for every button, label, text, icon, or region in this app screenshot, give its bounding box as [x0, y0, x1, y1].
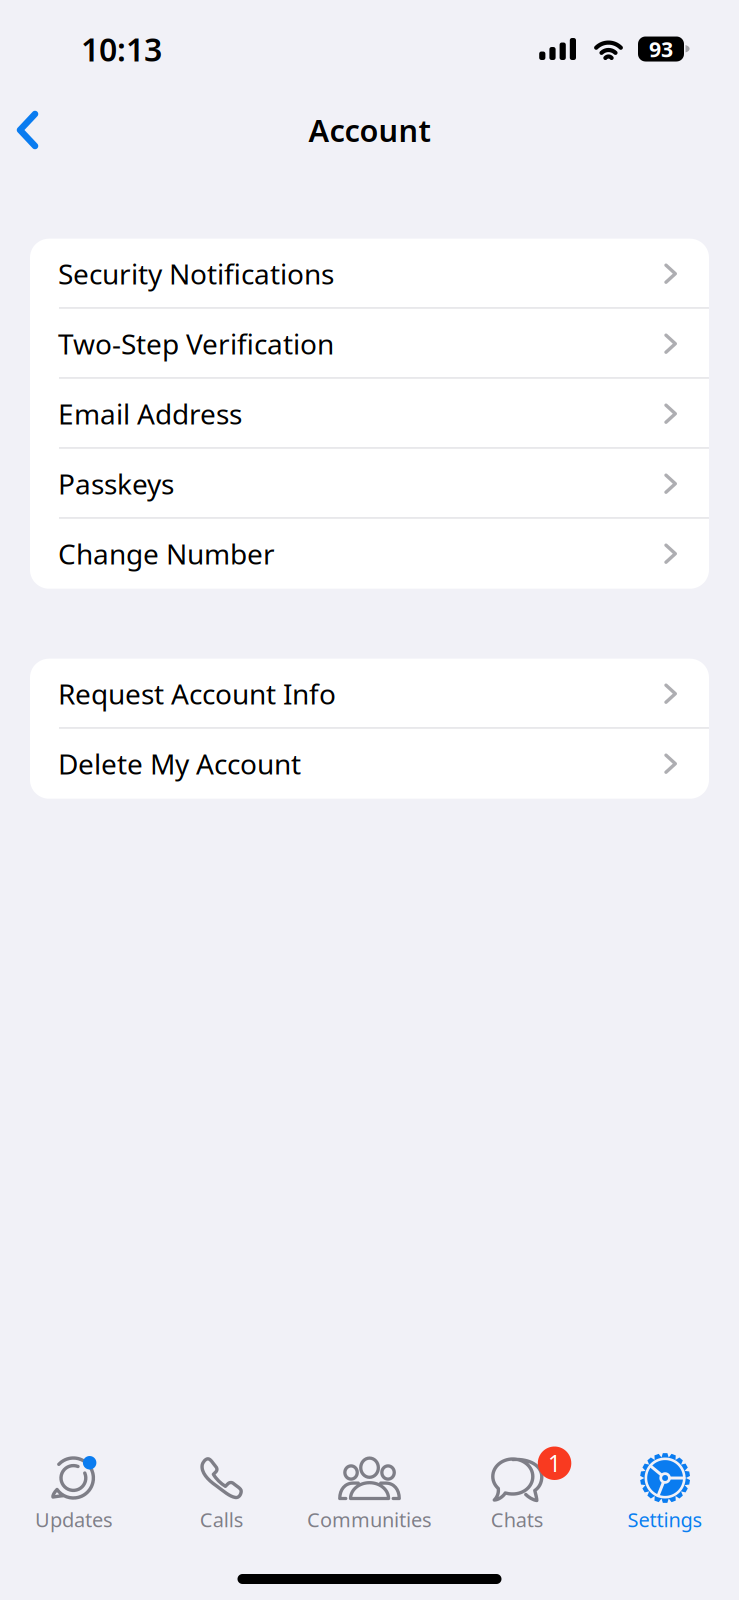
- button[interactable]: Delete My Account: [30, 729, 709, 799]
- button[interactable]: Change Number: [30, 519, 709, 589]
- button[interactable]: Two-Step Verification: [30, 309, 709, 379]
- staticText: Communities: [307, 1506, 432, 1533]
- staticText: 1: [548, 1448, 561, 1478]
- staticText: Calls: [200, 1506, 244, 1533]
- button[interactable]: Security Notifications: [30, 239, 709, 309]
- button[interactable]: Settings: [591, 1455, 739, 1530]
- staticText: Request Account Info: [58, 675, 336, 712]
- staticText: Delete My Account: [58, 745, 301, 782]
- button[interactable]: Calls: [148, 1455, 296, 1530]
- button[interactable]: Back: [0, 95, 61, 165]
- staticText: Email Address: [58, 395, 242, 432]
- staticText: Two-Step Verification: [58, 325, 334, 362]
- button[interactable]: 1: [443, 1455, 591, 1530]
- button[interactable]: Updates: [0, 1455, 148, 1530]
- staticText: 10:13: [81, 28, 162, 70]
- staticText: Passkeys: [58, 465, 174, 502]
- button[interactable]: Communities: [296, 1455, 443, 1530]
- button[interactable]: Request Account Info: [30, 659, 709, 729]
- staticText: Chats: [491, 1506, 544, 1533]
- staticText: Account: [308, 110, 430, 150]
- staticText: Updates: [35, 1506, 113, 1533]
- button[interactable]: Email Address: [30, 379, 709, 449]
- staticText: Security Notifications: [58, 255, 334, 292]
- staticText: Change Number: [58, 535, 275, 572]
- staticText: 93: [649, 35, 673, 63]
- button[interactable]: Passkeys: [30, 449, 709, 519]
- staticText: Settings: [628, 1506, 703, 1533]
